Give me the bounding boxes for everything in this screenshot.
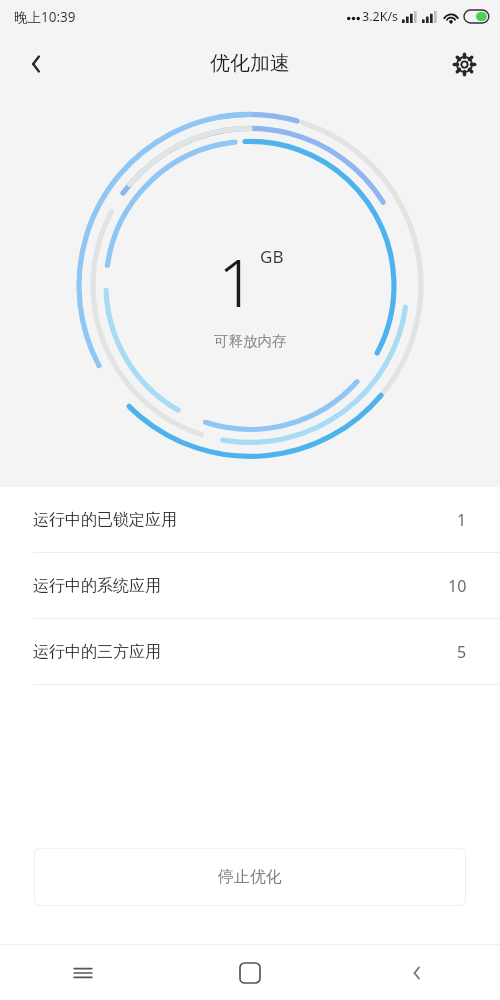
staticText: 运行中的已锁定应用 (33, 510, 177, 530)
button[interactable]: Home (166, 945, 333, 1000)
staticText: 运行中的系统应用 (33, 576, 161, 596)
staticText: 优化加速 (210, 51, 290, 76)
staticText: 停止优化 (218, 867, 282, 887)
button[interactable]: 运行中的已锁定应用 (0, 487, 500, 552)
staticText: 运行中的三方应用 (33, 642, 161, 662)
button[interactable]: Settings (438, 38, 490, 90)
staticText: 1 (218, 236, 256, 326)
staticText: 可释放内存 (214, 332, 287, 350)
button[interactable]: 运行中的三方应用 (0, 619, 500, 684)
staticText: 10 (448, 575, 467, 597)
staticText: 5 (457, 641, 467, 663)
staticText: 1 (457, 509, 467, 531)
button[interactable]: Menu (0, 945, 166, 1000)
staticText: 3.2K/s (362, 8, 399, 25)
button[interactable]: 运行中的系统应用 (0, 553, 500, 618)
staticText: 晚上10:39 (14, 8, 76, 26)
button[interactable]: 停止优化 (34, 848, 466, 906)
button[interactable]: Back (333, 945, 500, 1000)
button[interactable]: Back (10, 38, 62, 90)
staticText: GB (260, 245, 284, 268)
